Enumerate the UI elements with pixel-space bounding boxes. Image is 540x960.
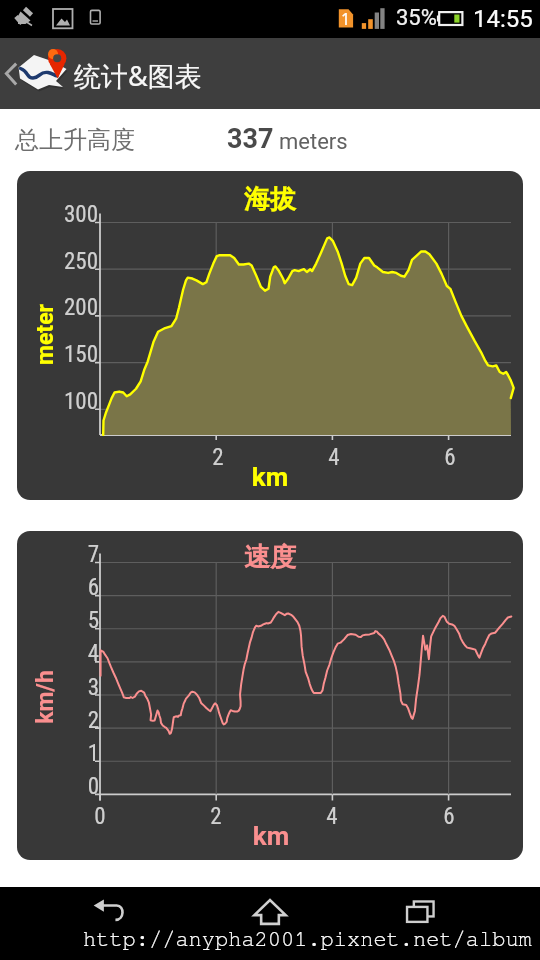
staticText: 6	[17, 574, 99, 601]
staticText: 300	[17, 201, 98, 228]
staticText: 14:55	[473, 5, 533, 33]
staticText: km	[221, 821, 321, 851]
staticText: 5	[17, 607, 99, 634]
button[interactable]: 海拔	[17, 171, 523, 500]
button[interactable]: 总上升高度	[0, 109, 540, 171]
staticText: 0	[17, 773, 99, 800]
staticText: 4	[314, 444, 354, 471]
staticText: 7	[17, 541, 99, 568]
staticText: 100	[17, 388, 98, 415]
staticText: 4	[17, 640, 99, 667]
button[interactable]: App icon	[18, 44, 70, 92]
staticText: 6	[429, 803, 469, 830]
staticText: km/h	[32, 670, 59, 724]
button[interactable]: Back	[0, 38, 24, 109]
staticText: 2	[196, 803, 236, 830]
staticText: 250	[17, 248, 98, 275]
staticText: 2	[198, 444, 238, 471]
button[interactable]: Recents	[392, 889, 452, 933]
staticText: 2	[17, 707, 99, 734]
staticText: 337	[227, 123, 274, 155]
staticText: 35%	[396, 5, 437, 31]
staticText: 150	[17, 341, 98, 368]
staticText: 200	[17, 294, 98, 321]
button[interactable]: Home	[240, 889, 300, 933]
staticText: meters	[279, 129, 348, 155]
staticText: http://anypha2001.pixnet.net/album	[83, 928, 532, 950]
staticText: 速度	[220, 541, 320, 574]
staticText: 3	[17, 674, 99, 701]
staticText: 4	[312, 803, 352, 830]
staticText: 6	[430, 444, 470, 471]
staticText: 1	[340, 8, 351, 30]
staticText: 总上升高度	[15, 125, 135, 155]
staticText: 统计&图表	[74, 57, 202, 94]
button[interactable]: 速度	[17, 531, 523, 860]
staticText: meter	[32, 304, 59, 365]
staticText: 0	[80, 803, 120, 830]
staticText: km	[220, 462, 320, 492]
button[interactable]: Back	[80, 889, 140, 933]
staticText: 海拔	[220, 183, 320, 216]
staticText: 1	[17, 740, 99, 767]
